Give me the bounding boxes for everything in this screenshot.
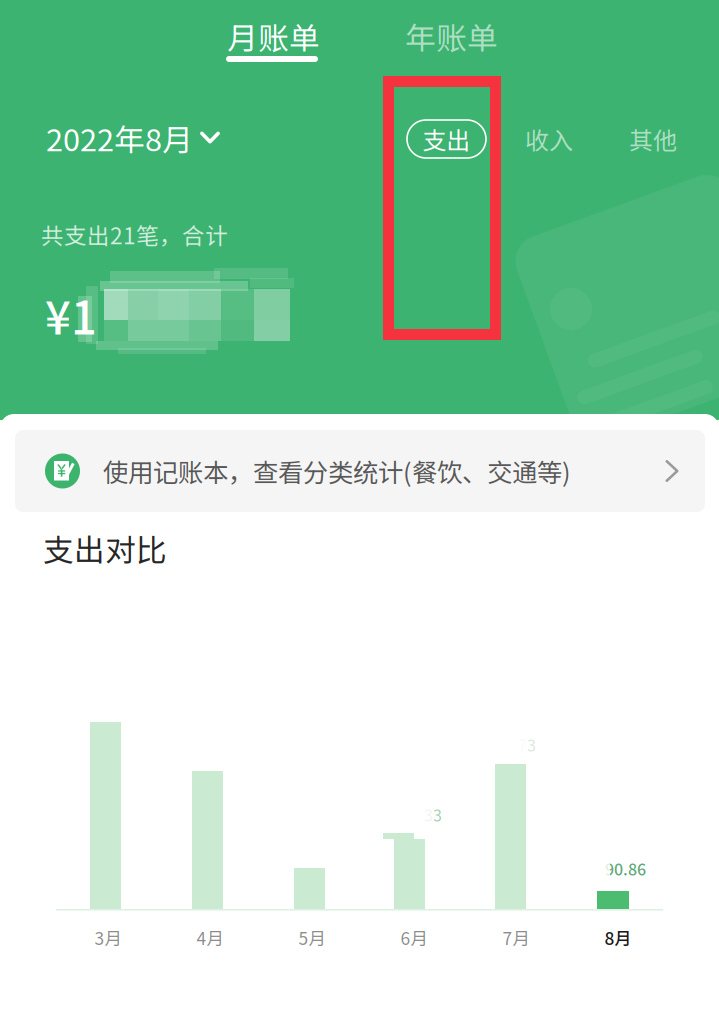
staticText: 使用记账本，查看分类统计(餐饮、交通等) — [103, 453, 571, 489]
button[interactable]: 收入 — [514, 120, 584, 158]
staticText: 90.86 — [605, 857, 646, 880]
button[interactable]: 其他 — [618, 120, 688, 158]
staticText: 7月 — [502, 925, 529, 950]
staticText: 支出 — [422, 122, 470, 156]
staticText: 6月 — [400, 925, 427, 950]
staticText: 月账单 — [227, 14, 320, 58]
staticText: 73 — [518, 733, 536, 756]
button[interactable]: 月账单 — [182, 4, 360, 72]
staticText: 3月 — [94, 925, 121, 950]
staticText: 共支出21笔，合计 — [41, 218, 228, 251]
staticText: 8月 — [604, 925, 631, 950]
staticText: 收入 — [525, 122, 573, 156]
staticText: 年账单 — [405, 14, 498, 58]
button[interactable]: 年账单 — [360, 4, 538, 72]
button[interactable]: 使用记账本，查看分类统计(餐饮、交通等) — [15, 430, 705, 512]
staticText: 4月 — [196, 925, 223, 950]
staticText: ¥1 — [45, 282, 97, 348]
button[interactable]: 2022年8月 — [46, 116, 220, 160]
staticText: 2022年8月 — [46, 116, 193, 160]
staticText: 33 — [424, 803, 442, 826]
button[interactable]: 支出 — [407, 120, 486, 158]
staticText: 5月 — [298, 925, 325, 950]
staticText: 其他 — [629, 122, 677, 156]
staticText: 支出对比 — [43, 526, 167, 570]
